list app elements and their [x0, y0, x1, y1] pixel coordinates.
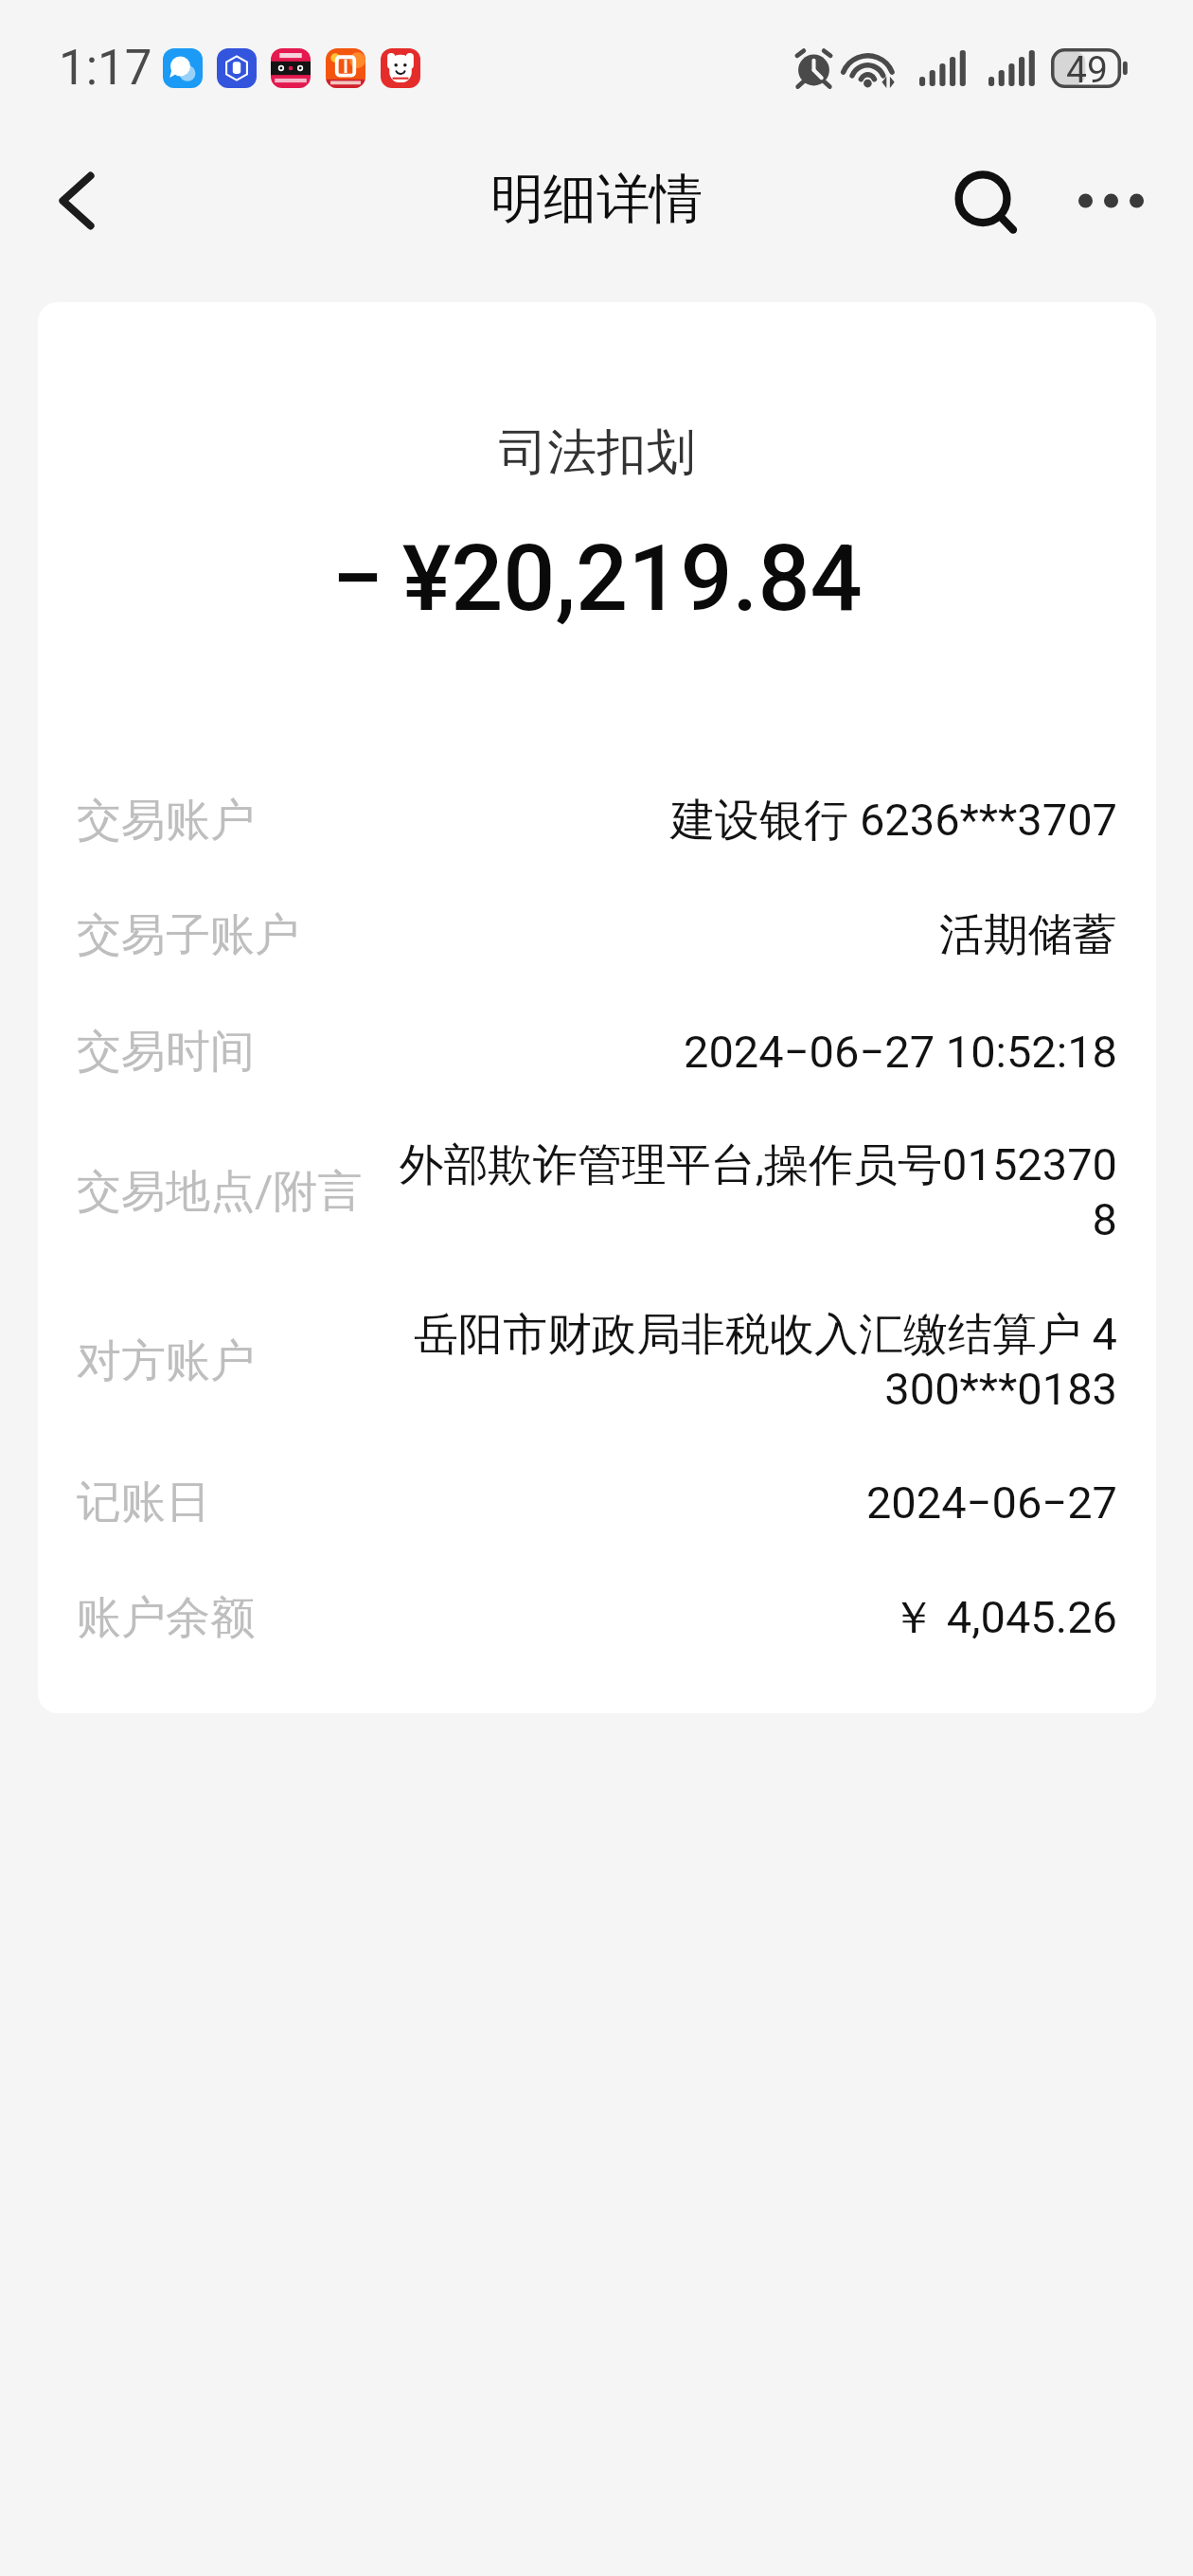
staticText: 2024−06−27 [233, 1476, 1117, 1529]
staticText: 交易子账户 [77, 907, 299, 963]
staticText: 司法扣划 [38, 421, 1156, 484]
staticText: 1:17 [59, 40, 152, 97]
staticText: ￥ 4,045.26 [277, 1590, 1117, 1646]
staticText: 建设银行 6236***3707 [277, 793, 1117, 849]
staticText: − ¥20,219.84 [38, 525, 1156, 633]
staticText: 账户余额 [77, 1590, 255, 1646]
staticText: 交易地点/附言 [77, 1164, 363, 1220]
staticText: 明细详情 [490, 166, 703, 233]
staticText: 对方账户 [77, 1333, 255, 1389]
staticText: 49 [1066, 48, 1108, 88]
button[interactable]: Search [943, 159, 1028, 244]
staticText: 岳阳市财政局非税收入汇缴结算户 4 300***0183 [277, 1307, 1117, 1416]
staticText: 交易时间 [77, 1024, 255, 1080]
button[interactable]: Back [34, 158, 119, 243]
staticText: 外部欺诈管理平台,操作员号0152370 8 [385, 1137, 1117, 1246]
staticText: 活期储蓄 [322, 907, 1117, 963]
button[interactable]: More options [1067, 155, 1158, 246]
staticText: 交易账户 [77, 793, 255, 849]
staticText: 记账日 [77, 1475, 210, 1530]
staticText: 2024−06−27 10:52:18 [277, 1026, 1117, 1078]
